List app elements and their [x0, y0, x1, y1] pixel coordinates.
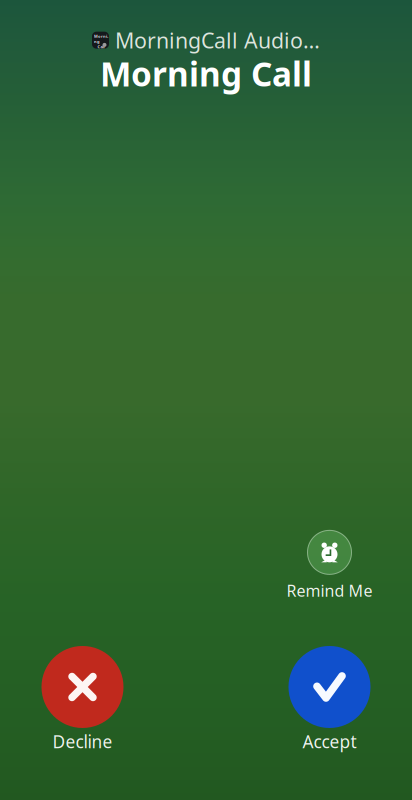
button[interactable]: Accept	[288, 646, 370, 753]
button[interactable]: Remind Me	[247, 529, 412, 602]
staticText: MorningCall Audio…	[115, 26, 320, 54]
staticText: Call	[97, 44, 104, 49]
staticText: Morning Call	[100, 51, 312, 96]
staticText: Decline	[52, 730, 112, 753]
button[interactable]: Decline	[41, 646, 123, 753]
staticText: Remind Me	[286, 580, 372, 601]
staticText: Morning	[94, 33, 108, 44]
staticText: Accept	[302, 730, 356, 753]
